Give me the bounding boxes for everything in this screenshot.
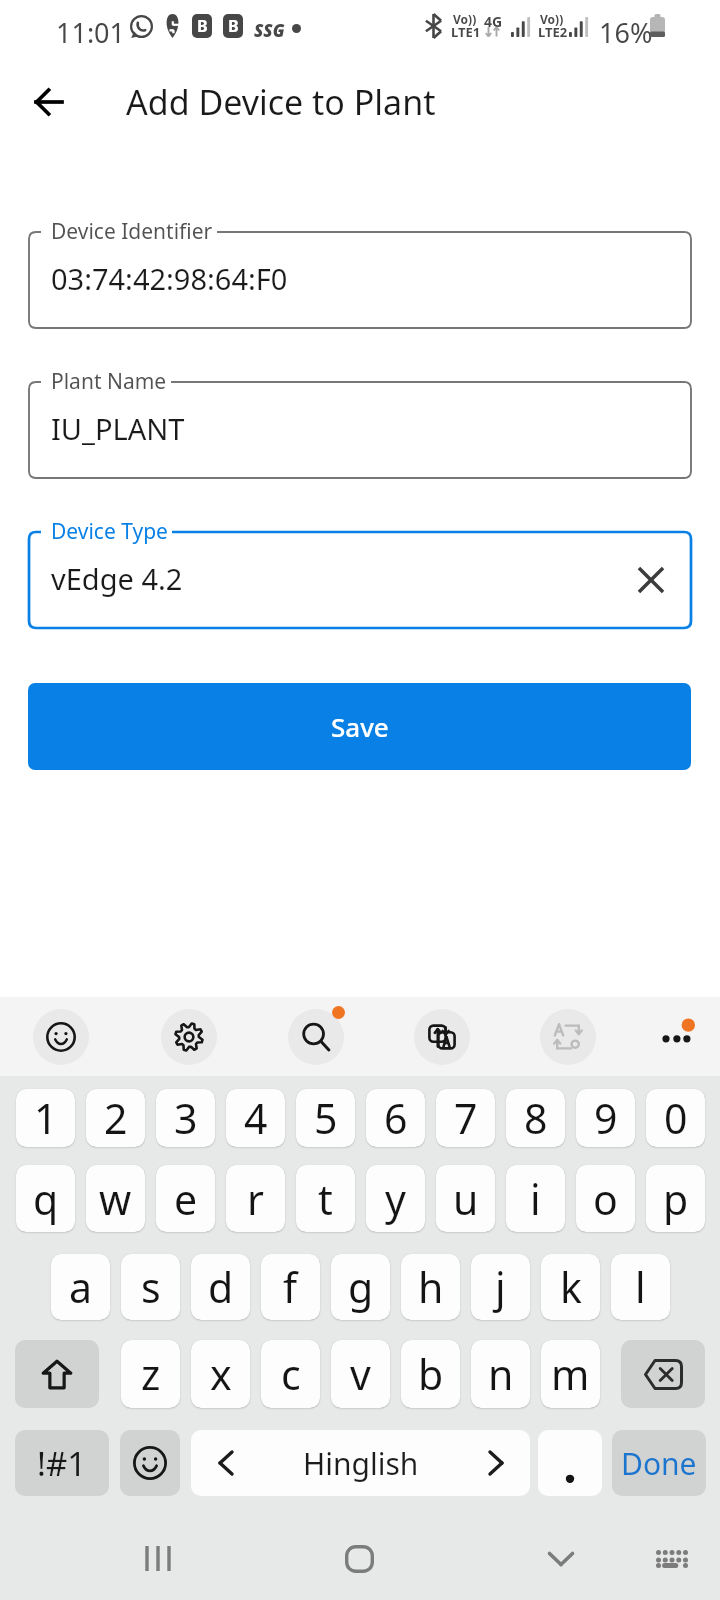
staticText: LTE2 <box>538 23 568 41</box>
button[interactable]: 7 <box>436 1089 495 1147</box>
button[interactable]: p <box>646 1165 705 1232</box>
staticText: Vo)) <box>540 11 564 27</box>
staticText: c <box>281 1346 301 1402</box>
button[interactable]: y <box>366 1165 425 1232</box>
button[interactable]: 4 <box>226 1089 285 1147</box>
staticText: x <box>210 1346 232 1402</box>
staticText: o <box>593 1171 618 1227</box>
staticText: v <box>350 1346 371 1402</box>
button[interactable]: e <box>156 1165 215 1232</box>
button[interactable]: More options <box>650 1009 706 1065</box>
button[interactable]: Back <box>9 62 89 142</box>
button[interactable]: Translate <box>414 1009 470 1065</box>
button[interactable]: 6 <box>366 1089 425 1147</box>
button[interactable]: j <box>471 1254 530 1320</box>
button[interactable]: k <box>541 1254 600 1320</box>
button[interactable]: v <box>331 1340 390 1408</box>
staticText: f <box>283 1259 298 1315</box>
staticText: i <box>530 1171 541 1227</box>
button[interactable]: o <box>576 1165 635 1232</box>
button[interactable]: q <box>16 1165 75 1232</box>
button[interactable]: Switch keyboard <box>622 1507 720 1600</box>
button[interactable]: Backspace <box>621 1340 705 1408</box>
button[interactable]: Hide keyboard <box>511 1507 611 1600</box>
button[interactable]: Emoji <box>120 1430 180 1496</box>
button[interactable]: 0 <box>646 1089 705 1147</box>
staticText: 9 <box>594 1090 618 1146</box>
staticText: u <box>453 1171 479 1227</box>
staticText: Vo)) <box>453 11 477 27</box>
button[interactable]: c <box>261 1340 320 1408</box>
button[interactable]: f <box>261 1254 320 1320</box>
staticText: q <box>33 1171 59 1227</box>
staticText: 16% <box>599 14 653 51</box>
staticText: !#1 <box>37 1441 87 1486</box>
button[interactable]: Shift <box>15 1340 99 1408</box>
staticText: g <box>348 1259 374 1315</box>
button[interactable]: d <box>191 1254 250 1320</box>
button[interactable]: r <box>226 1165 285 1232</box>
staticText: Save <box>331 709 389 744</box>
staticText: b <box>418 1346 444 1402</box>
staticText: 1 <box>34 1090 58 1146</box>
button[interactable]: z <box>121 1340 180 1408</box>
button[interactable]: Home <box>309 1507 409 1600</box>
button[interactable]: 2 <box>86 1089 145 1147</box>
button[interactable]: g <box>331 1254 390 1320</box>
button[interactable]: Search <box>288 1009 344 1065</box>
button[interactable]: w <box>86 1165 145 1232</box>
staticText: B <box>197 15 208 37</box>
button[interactable]: Clear <box>620 532 682 628</box>
staticText: e <box>174 1171 198 1227</box>
staticText: l <box>635 1259 646 1315</box>
staticText: y <box>385 1171 406 1227</box>
button[interactable]: t <box>296 1165 355 1232</box>
staticText: vEdge 4.2 <box>51 559 183 598</box>
staticText: t <box>318 1171 333 1227</box>
button[interactable]: 1 <box>16 1089 75 1147</box>
button[interactable]: Save <box>28 683 691 770</box>
button[interactable]: m <box>541 1340 600 1408</box>
button[interactable]: 3 <box>156 1089 215 1147</box>
button[interactable]: Emoji <box>33 1009 89 1065</box>
staticText: j <box>495 1259 506 1315</box>
button[interactable]: Plant Name <box>29 382 691 478</box>
staticText: 0 <box>664 1090 688 1146</box>
button[interactable]: s <box>121 1254 180 1320</box>
button[interactable]: a <box>51 1254 110 1320</box>
button[interactable]: l <box>611 1254 670 1320</box>
staticText: n <box>488 1346 514 1402</box>
staticText: 8 <box>524 1090 548 1146</box>
staticText: 11:01 <box>56 14 126 51</box>
button[interactable]: n <box>471 1340 530 1408</box>
button[interactable]: Hinglish <box>191 1430 530 1496</box>
button[interactable]: i <box>506 1165 565 1232</box>
button[interactable]: Done <box>612 1430 706 1496</box>
staticText: h <box>418 1259 444 1315</box>
button[interactable]: Text modes <box>540 1009 596 1065</box>
button[interactable]: u <box>436 1165 495 1232</box>
staticText: Add Device to Plant <box>126 79 436 125</box>
button[interactable]: h <box>401 1254 460 1320</box>
button[interactable]: Device Type <box>29 532 691 628</box>
staticText: d <box>208 1259 234 1315</box>
button[interactable]: 9 <box>576 1089 635 1147</box>
staticText: Device Type <box>51 517 168 546</box>
button[interactable]: b <box>401 1340 460 1408</box>
button[interactable]: x <box>191 1340 250 1408</box>
button[interactable]: Settings <box>161 1009 217 1065</box>
staticText: 6 <box>384 1090 408 1146</box>
button[interactable]: Recents <box>108 1507 208 1600</box>
staticText: Plant Name <box>51 367 167 396</box>
staticText: k <box>560 1259 582 1315</box>
button[interactable]: Device Identifier <box>29 232 691 328</box>
staticText: Done <box>621 1443 697 1484</box>
button[interactable]: !#1 <box>15 1430 109 1496</box>
button[interactable]: 5 <box>296 1089 355 1147</box>
staticText: 4 <box>244 1090 268 1146</box>
button[interactable] <box>538 1430 602 1496</box>
staticText: w <box>99 1171 132 1227</box>
button[interactable]: 8 <box>506 1089 565 1147</box>
staticText: SSG <box>254 19 285 42</box>
staticText: r <box>247 1171 264 1227</box>
